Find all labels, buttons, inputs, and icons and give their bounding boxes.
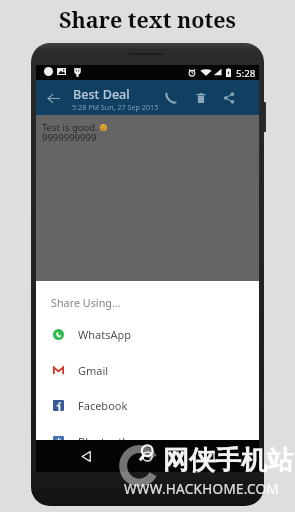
button[interactable]: Bluetooth bbox=[36, 424, 259, 459]
staticText: 5:28 bbox=[236, 67, 256, 80]
staticText: 网侠手机站 bbox=[163, 444, 293, 477]
button[interactable]: Back bbox=[70, 440, 102, 472]
staticText: WWW.HACKHOME.COM bbox=[124, 480, 279, 498]
button[interactable]: Facebook bbox=[36, 388, 259, 423]
staticText: Share text notes bbox=[59, 5, 236, 34]
button[interactable]: Delete bbox=[189, 83, 213, 112]
staticText: WhatsApp bbox=[78, 327, 131, 342]
staticText: 5:28 PM Sun, 27 Sep 2015 bbox=[72, 102, 159, 112]
button[interactable]: Back bbox=[40, 85, 66, 111]
button[interactable]: Gmail bbox=[36, 353, 259, 388]
button[interactable]: Home bbox=[131, 440, 163, 472]
button[interactable]: Share bbox=[217, 83, 241, 112]
button[interactable]: WhatsApp bbox=[36, 317, 259, 352]
staticText: Test is good. bbox=[42, 121, 98, 134]
staticText: Best Deal bbox=[73, 86, 130, 103]
staticText: Facebook bbox=[78, 398, 128, 413]
staticText: Gmail bbox=[78, 363, 109, 378]
staticText: 9999999999 bbox=[42, 131, 97, 144]
button[interactable]: Recents bbox=[193, 440, 225, 472]
staticText: Share Using... bbox=[51, 295, 121, 310]
button[interactable]: Call bbox=[159, 83, 183, 112]
staticText: Bluetooth bbox=[78, 434, 130, 449]
